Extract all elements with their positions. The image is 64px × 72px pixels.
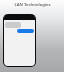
staticText: LAN Technologies	[14, 2, 51, 8]
button[interactable]: LAN Technologies	[0, 0, 64, 9]
